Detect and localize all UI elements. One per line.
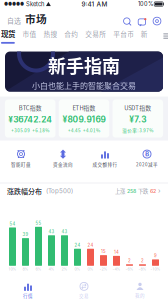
staticText: 溢价率: 3.97% <box>122 127 153 134</box>
staticText: 智能盯盘 <box>11 161 31 168</box>
staticText: 43 <box>48 229 54 234</box>
button[interactable]: 新 <box>141 29 148 43</box>
staticText: 2% <box>61 267 67 271</box>
staticText: 4% <box>48 267 54 271</box>
staticText: +4.45 +4.01% <box>68 127 100 134</box>
staticText: 24 <box>87 243 93 248</box>
staticText: 市值 <box>23 29 36 39</box>
button[interactable]: 现货 <box>1 28 15 44</box>
staticText: +305.09 +6.18% <box>11 127 49 134</box>
button[interactable]: 上涨 <box>115 187 161 195</box>
staticText: 2020减半 <box>136 161 158 168</box>
staticText: 258 <box>125 188 136 194</box>
staticText: 新 <box>141 29 148 39</box>
staticText: -10% <box>150 267 160 271</box>
button[interactable]: 消息 <box>138 17 146 26</box>
staticText: 成交额排行 <box>92 161 117 168</box>
staticText: 现货 <box>1 28 15 39</box>
button[interactable]: 新手指南 <box>5 52 163 92</box>
staticText: -4% <box>112 267 120 271</box>
staticText: -2% <box>99 267 107 271</box>
button[interactable]: 搜索 <box>123 17 131 26</box>
staticText: 交易 <box>79 292 89 299</box>
staticText: 0% <box>74 267 80 271</box>
staticText: 55 <box>35 221 41 226</box>
staticText: (Top500) <box>46 187 73 195</box>
staticText: ETH指数 <box>72 103 95 112</box>
staticText: 9 <box>154 253 157 258</box>
staticText: 2 <box>141 258 144 263</box>
staticText: 39 <box>22 232 28 237</box>
staticText: 行情 <box>23 292 33 299</box>
button[interactable]: 我的 <box>112 279 168 300</box>
staticText: 合约 <box>64 29 78 39</box>
staticText: 热搜 <box>43 29 57 39</box>
staticText: 100% <box>138 1 153 7</box>
staticText: 我的 <box>135 292 145 299</box>
staticText: 新手指南 <box>48 52 120 78</box>
button[interactable]: 交易 <box>56 279 112 300</box>
staticText: 小白也能上手的智能聚合交易 <box>32 79 136 91</box>
button[interactable]: 合约 <box>64 29 78 43</box>
staticText: ¥36742.24 <box>8 114 52 124</box>
staticText: 62 <box>148 188 156 194</box>
staticText: -6% <box>125 267 133 271</box>
staticText: 资金流向 <box>53 161 73 168</box>
button[interactable]: Ƀ <box>126 150 168 167</box>
button[interactable]: 市场 <box>25 11 47 26</box>
button[interactable]: 更多分类 <box>162 32 168 40</box>
staticText: Sketch <box>24 0 44 8</box>
staticText: -8% <box>138 267 146 271</box>
staticText: ¥7.3 <box>129 114 146 124</box>
staticText: 0% <box>87 267 93 271</box>
staticText: ¥809.9169 <box>62 114 105 124</box>
staticText: 自选 <box>7 15 21 25</box>
staticText: 8% <box>22 267 28 271</box>
staticText: › <box>156 187 161 195</box>
button[interactable]: 智能盯盘 <box>0 150 42 167</box>
staticText: Ƀ <box>145 150 149 158</box>
staticText: BTC指数 <box>19 103 42 112</box>
staticText: USDT指数 <box>124 103 151 112</box>
staticText: 上涨 <box>115 187 125 195</box>
button[interactable]: 自选 <box>7 15 21 26</box>
staticText: 9:41 AM <box>81 0 107 8</box>
staticText: 14 <box>114 250 119 255</box>
staticText: 6% <box>35 267 41 271</box>
staticText: 市场 <box>25 11 47 26</box>
button[interactable]: 设置 <box>153 17 161 26</box>
staticText: 下跌 <box>136 187 148 195</box>
button[interactable]: 交易所 <box>85 29 106 43</box>
button[interactable]: 资金流向 <box>42 150 84 167</box>
staticText: 54 <box>9 221 15 226</box>
button[interactable]: 成交额排行 <box>84 150 126 167</box>
staticText: 10% <box>8 267 16 271</box>
staticText: ●●●●● <box>4 1 24 7</box>
button[interactable]: BTC指数 <box>5 100 55 138</box>
staticText: 43 <box>61 229 67 234</box>
staticText: 2 <box>128 258 131 263</box>
button[interactable]: 市值 <box>23 29 36 43</box>
staticText: 平台币 <box>113 29 134 39</box>
staticText: 涨跌幅分布 <box>7 186 42 196</box>
button[interactable]: 行情 <box>0 279 56 300</box>
staticText: 24 <box>74 243 80 248</box>
button[interactable]: USDT指数 <box>112 100 163 138</box>
staticText: 交易所 <box>85 29 106 39</box>
button[interactable]: ETH指数 <box>59 100 109 138</box>
button[interactable]: 热搜 <box>43 29 57 43</box>
staticText: 15 <box>101 249 106 254</box>
button[interactable]: 平台币 <box>113 29 134 43</box>
